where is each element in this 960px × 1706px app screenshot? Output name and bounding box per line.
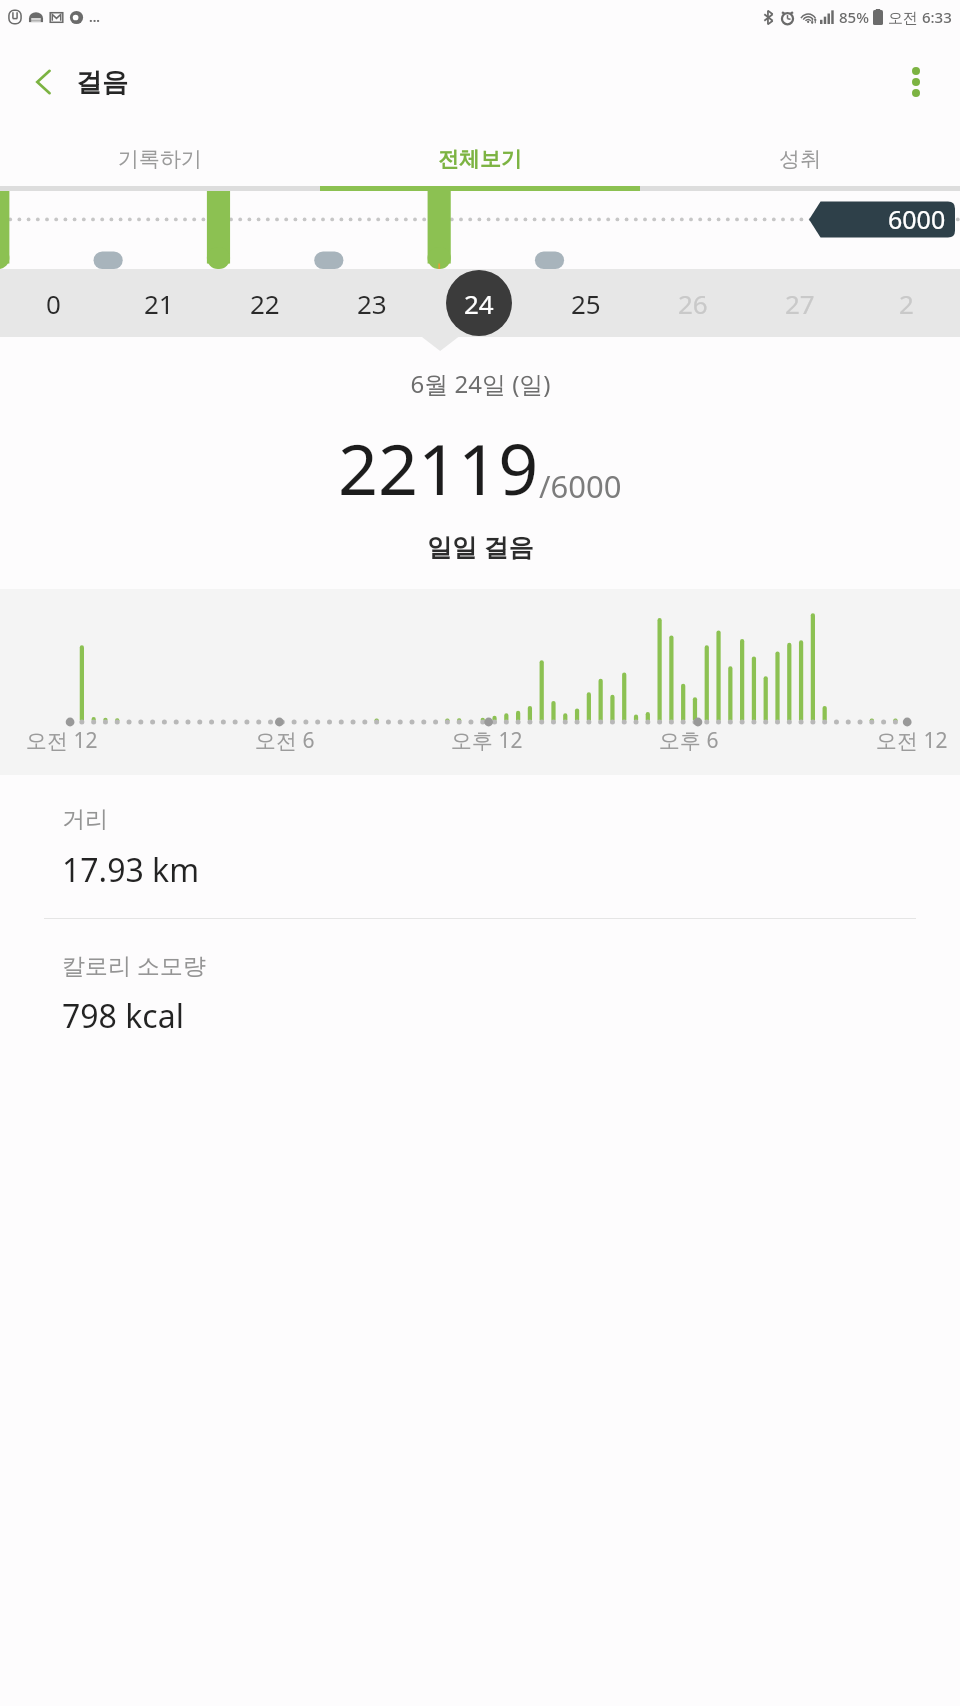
button[interactable]: Back [16,54,72,110]
staticText: 798 kcal [62,994,184,1038]
staticText: 기록하기 [118,146,202,172]
staticText: 85% [839,7,869,27]
button[interactable]: 칼로리 소모량 [0,919,960,1042]
staticText: 21 [144,286,174,321]
staticText: 22119 [338,420,539,515]
button[interactable]: 25 [532,269,639,337]
button[interactable]: 성취 [640,130,960,191]
button[interactable]: 26 [639,269,746,337]
staticText: 전체보기 [438,146,522,172]
staticText: 22 [250,286,280,321]
staticText: 거리 [62,805,108,834]
staticText: 칼로리 소모량 [62,949,206,980]
button[interactable]: 전체보기 [320,130,640,191]
button[interactable]: 27 [746,269,853,337]
button[interactable]: 23 [318,269,425,337]
button[interactable]: 거리 [0,775,960,896]
button[interactable]: 22 [212,269,318,337]
staticText: 6000 [888,202,946,236]
staticText: 17.93 km [62,848,200,892]
staticText: 걸음 [76,66,128,99]
staticText: ... [89,8,100,26]
staticText: /6000 [539,465,622,507]
staticText: 23 [357,286,387,321]
staticText: 25 [571,286,601,321]
staticText: 2 [899,286,914,321]
staticText: 오전 6:33 [888,7,952,27]
button[interactable]: 2 [853,269,960,337]
staticText: 6월 24일 (일) [410,367,551,400]
button[interactable]: 0 [0,269,106,337]
staticText: 오전 6 [255,726,315,755]
button[interactable]: 24 [425,269,532,337]
button[interactable]: 21 [106,269,212,337]
staticText: 24 [464,286,494,321]
staticText: 일일 걸음 [427,529,534,563]
staticText: 27 [785,286,815,321]
staticText: 오후 12 [451,726,523,755]
button[interactable]: 기록하기 [0,130,320,191]
staticText: 26 [678,286,708,321]
staticText: 0 [46,286,61,321]
button[interactable]: More options [888,54,944,110]
staticText: 오후 6 [659,726,719,755]
staticText: 오전 12 [26,726,98,755]
staticText: 오전 12 [876,726,948,755]
staticText: 성취 [779,146,821,172]
